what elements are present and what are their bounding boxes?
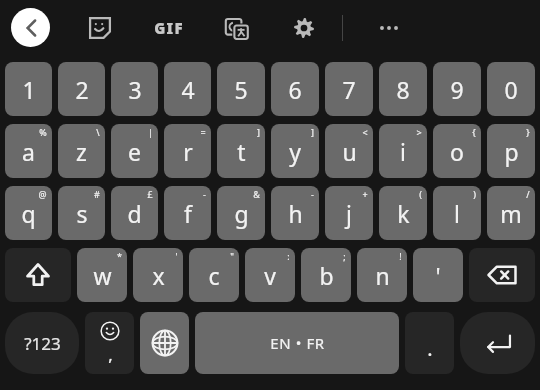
button[interactable]: v	[245, 248, 295, 302]
button[interactable]: p	[487, 124, 535, 178]
button[interactable]: 9	[433, 62, 481, 116]
staticText: ,	[108, 343, 113, 366]
button[interactable]: f	[164, 186, 211, 240]
staticText: ]	[311, 126, 314, 138]
button[interactable]: g	[217, 186, 265, 240]
button[interactable]: 6	[271, 62, 319, 116]
staticText: m	[500, 198, 522, 229]
staticText: 3	[128, 74, 142, 105]
staticText: j	[346, 198, 352, 229]
staticText: 9	[450, 74, 464, 105]
button[interactable]: Switch language	[140, 312, 189, 374]
button[interactable]: Enter	[460, 312, 535, 374]
staticText: :	[287, 250, 290, 262]
staticText: '	[175, 250, 178, 262]
button[interactable]: 0	[487, 62, 535, 116]
button[interactable]: q	[5, 186, 52, 240]
button[interactable]: '	[413, 248, 463, 302]
staticText: x	[152, 260, 165, 291]
staticText: s	[76, 198, 88, 229]
button[interactable]: ?123	[5, 312, 79, 374]
staticText: *	[117, 250, 122, 262]
staticText: y	[289, 136, 301, 167]
staticText: /	[526, 188, 530, 200]
button[interactable]: a	[5, 124, 52, 178]
staticText: \	[96, 126, 100, 138]
staticText: n	[375, 260, 390, 291]
button[interactable]: .	[405, 312, 454, 374]
staticText: %	[39, 126, 47, 138]
staticText: 8	[396, 74, 410, 105]
button[interactable]: Back	[11, 8, 50, 47]
staticText: (	[419, 188, 422, 200]
staticText: #	[94, 188, 100, 200]
staticText: l	[454, 198, 460, 229]
staticText: &	[253, 188, 260, 200]
staticText: g	[234, 198, 249, 229]
button[interactable]: 1	[5, 62, 52, 116]
staticText: 7	[342, 74, 356, 105]
staticText: r	[183, 136, 193, 167]
staticText: >	[416, 126, 422, 138]
staticText: w	[93, 260, 112, 291]
staticText: !	[399, 250, 402, 262]
button[interactable]: h	[271, 186, 319, 240]
staticText: 6	[288, 74, 302, 105]
button[interactable]: o	[433, 124, 481, 178]
button[interactable]: Settings	[282, 0, 326, 55]
staticText: d	[127, 198, 142, 229]
button[interactable]: u	[325, 124, 373, 178]
staticText: ?123	[24, 332, 61, 355]
staticText: k	[397, 198, 410, 229]
staticText: i	[400, 136, 406, 167]
staticText: |	[148, 126, 153, 138]
staticText: e	[128, 136, 141, 167]
button[interactable]: 3	[111, 62, 158, 116]
button[interactable]: y	[271, 124, 319, 178]
staticText: +	[362, 188, 368, 200]
button[interactable]: b	[301, 248, 351, 302]
button[interactable]: 8	[379, 62, 427, 116]
button[interactable]: r	[164, 124, 211, 178]
staticText: p	[504, 136, 519, 167]
button[interactable]: GIF	[144, 0, 194, 55]
button[interactable]: 5	[217, 62, 265, 116]
button[interactable]: Emoji	[85, 312, 134, 374]
button[interactable]: c	[189, 248, 239, 302]
staticText: <	[362, 126, 368, 138]
button[interactable]: l	[433, 186, 481, 240]
button[interactable]: EN • FR	[195, 312, 399, 374]
staticText: b	[319, 260, 334, 291]
button[interactable]: e	[111, 124, 158, 178]
button[interactable]: k	[379, 186, 427, 240]
button[interactable]: Shift	[5, 248, 71, 302]
staticText: q	[21, 198, 36, 229]
button[interactable]: x	[133, 248, 183, 302]
button[interactable]: More options	[365, 0, 413, 55]
button[interactable]: i	[379, 124, 427, 178]
staticText: ]	[257, 126, 260, 138]
staticText: }	[526, 126, 530, 138]
staticText: a	[22, 136, 35, 167]
button[interactable]: t	[217, 124, 265, 178]
button[interactable]: 2	[58, 62, 105, 116]
button[interactable]: Translate	[212, 0, 260, 55]
button[interactable]: 7	[325, 62, 373, 116]
staticText: f	[184, 198, 192, 229]
button[interactable]: s	[58, 186, 105, 240]
button[interactable]: 4	[164, 62, 211, 116]
staticText: o	[450, 136, 464, 167]
staticText: EN • FR	[270, 333, 325, 353]
button[interactable]: n	[357, 248, 407, 302]
staticText: 5	[234, 74, 248, 105]
button[interactable]: z	[58, 124, 105, 178]
button[interactable]: Stickers	[76, 0, 124, 55]
staticText: -	[311, 188, 314, 200]
staticText: "	[230, 250, 234, 262]
staticText: z	[76, 136, 87, 167]
button[interactable]: d	[111, 186, 158, 240]
button[interactable]: w	[77, 248, 127, 302]
button[interactable]: m	[487, 186, 535, 240]
button[interactable]: j	[325, 186, 373, 240]
button[interactable]: Backspace	[469, 248, 535, 302]
